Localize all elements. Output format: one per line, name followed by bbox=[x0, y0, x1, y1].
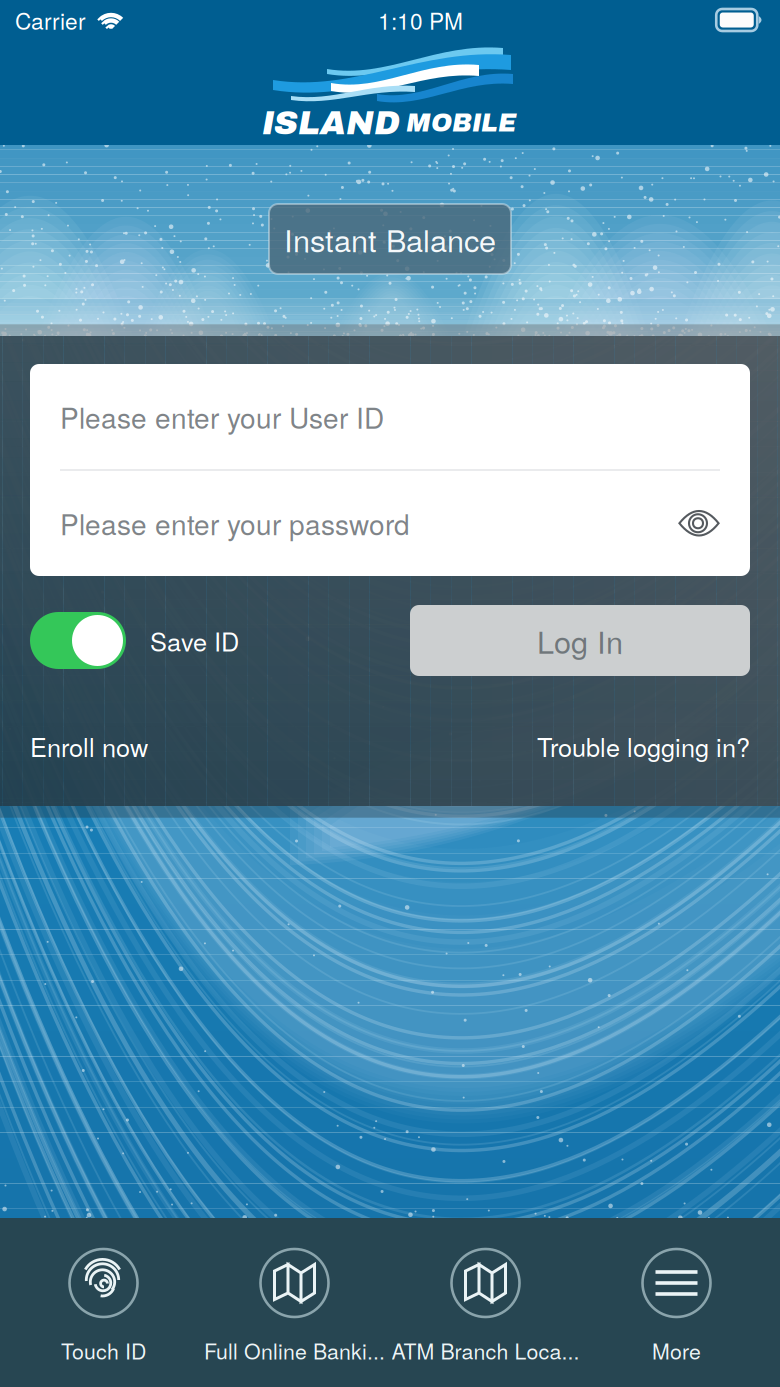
button[interactable]: Enroll now bbox=[30, 728, 148, 764]
staticText: Enroll now bbox=[30, 728, 148, 764]
staticText: Please enter your password bbox=[60, 503, 410, 543]
staticText: ISLAND bbox=[262, 105, 400, 141]
staticText: Touch ID bbox=[61, 1335, 146, 1365]
staticText: Save ID bbox=[150, 622, 239, 659]
staticText: Log In bbox=[537, 618, 623, 662]
button[interactable]: More bbox=[581, 1218, 772, 1387]
button[interactable]: Instant Balance bbox=[269, 204, 511, 274]
button[interactable]: ATM Branch Loca... bbox=[390, 1218, 581, 1387]
button[interactable]: Touch ID bbox=[8, 1218, 199, 1387]
button[interactable]: Trouble logging in? bbox=[537, 728, 750, 764]
staticText: ATM Branch Loca... bbox=[391, 1335, 579, 1365]
button[interactable]: Full Online Banki... bbox=[199, 1218, 390, 1387]
staticText: Carrier bbox=[15, 4, 86, 36]
staticText: MOBILE bbox=[406, 109, 516, 137]
button[interactable]: Log In bbox=[410, 605, 750, 676]
staticText: Trouble logging in? bbox=[537, 728, 750, 764]
staticText: Please enter your User ID bbox=[60, 397, 384, 437]
button[interactable]: Save ID bbox=[30, 605, 239, 676]
staticText: More bbox=[652, 1335, 701, 1365]
staticText: 1:10 PM bbox=[378, 4, 463, 36]
staticText: Instant Balance bbox=[284, 217, 496, 261]
staticText: Full Online Banki... bbox=[204, 1335, 385, 1365]
